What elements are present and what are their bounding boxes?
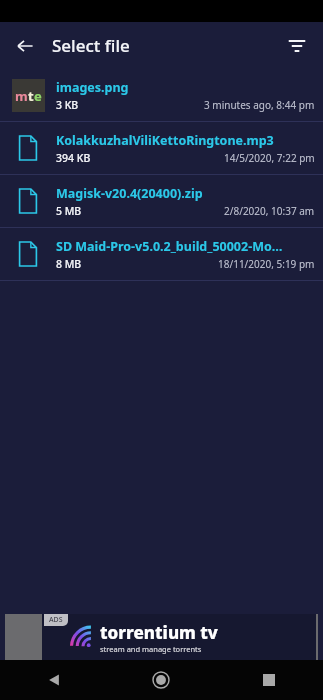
staticText: 3 minutes ago, 8:44 pm <box>204 98 315 112</box>
button[interactable]: Home <box>107 660 215 700</box>
button[interactable]: Advertisement <box>5 614 318 660</box>
button[interactable]: Filter <box>278 27 316 65</box>
button[interactable]: Magisk-v20.4(20400).zip <box>0 175 323 227</box>
button[interactable]: Recent apps <box>215 660 323 700</box>
staticText: 2/8/2020, 10:37 am <box>224 204 315 218</box>
staticText: 394 KB <box>56 151 91 165</box>
button[interactable]: KolakkuzhalViliKettoRingtone.mp3 <box>0 122 323 174</box>
button[interactable]: SD Maid-Pro-v5.0.2_build_50002-Mo… <box>0 228 323 280</box>
button[interactable]: Back <box>0 660 107 700</box>
button[interactable]: m <box>0 69 323 121</box>
staticText: t <box>28 87 34 105</box>
staticText: torrentium tv <box>100 621 218 644</box>
staticText: 14/5/2020, 7:22 pm <box>224 151 315 165</box>
staticText: SD Maid-Pro-v5.0.2_build_50002-Mo… <box>56 238 283 255</box>
button[interactable]: Back <box>6 27 44 65</box>
staticText: m <box>15 87 28 105</box>
staticText: KolakkuzhalViliKettoRingtone.mp3 <box>56 132 274 149</box>
staticText: 8 MB <box>56 257 82 271</box>
staticText: Select file <box>52 34 130 57</box>
staticText: 5 MB <box>56 204 82 218</box>
staticText: Magisk-v20.4(20400).zip <box>56 185 203 202</box>
staticText: 3 KB <box>56 98 79 112</box>
staticText: ADS <box>49 615 63 625</box>
staticText: stream and manage torrents <box>100 644 202 654</box>
staticText: images.png <box>56 79 129 96</box>
staticText: 18/11/2020, 5:19 pm <box>218 257 315 271</box>
staticText: e <box>34 87 42 105</box>
